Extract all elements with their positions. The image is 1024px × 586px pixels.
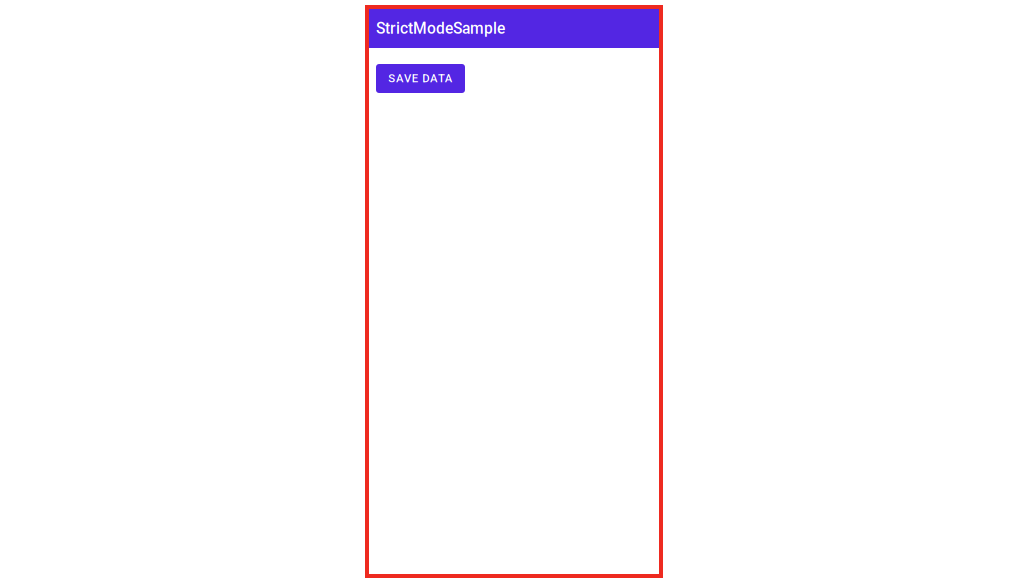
staticText: StrictModeSample (376, 19, 505, 38)
button[interactable]: Save Data (376, 64, 465, 93)
staticText: SAVE DATA (388, 72, 453, 85)
